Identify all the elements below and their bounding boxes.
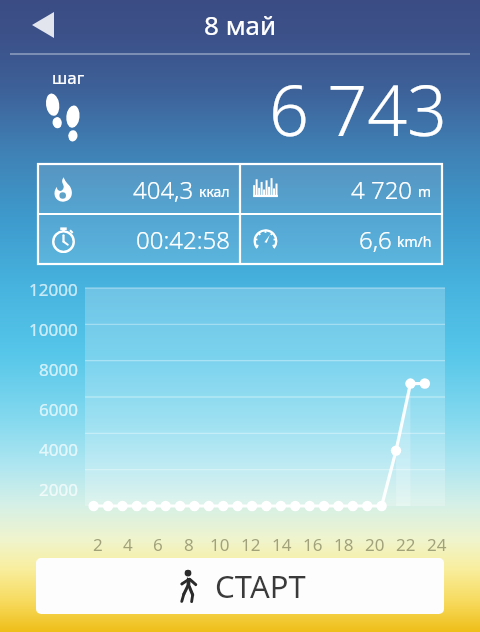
staticText: 12000	[29, 278, 78, 301]
staticText: 10000	[29, 318, 78, 341]
other: Calories	[50, 176, 77, 203]
staticText: 18	[334, 533, 354, 556]
staticText: СТАРТ	[215, 565, 306, 607]
staticText: 4 720	[351, 173, 413, 206]
staticText: 4000	[39, 438, 78, 461]
button[interactable]: Speed	[240, 214, 442, 264]
staticText: 22	[396, 533, 416, 556]
other: Distance	[252, 176, 279, 203]
staticText: 8 май	[204, 7, 277, 42]
staticText: 6000	[39, 398, 78, 421]
staticText: 10	[210, 533, 230, 556]
button[interactable]: СТАРТ	[36, 558, 444, 614]
staticText: m	[418, 182, 432, 201]
staticText: 20	[365, 533, 385, 556]
staticText: 16	[303, 533, 323, 556]
button[interactable]: Calories	[38, 164, 240, 214]
staticText: 6	[153, 533, 163, 556]
button[interactable]: Back	[16, 2, 70, 48]
staticText: 404,3	[133, 173, 194, 206]
staticText: 6 743	[269, 61, 448, 156]
staticText: 12	[241, 533, 261, 556]
staticText: 2	[93, 533, 103, 556]
staticText: 14	[272, 533, 292, 556]
staticText: 8000	[39, 358, 78, 381]
staticText: km/h	[397, 232, 432, 251]
staticText: 24	[427, 533, 447, 556]
staticText: 00:42:58	[136, 223, 230, 256]
staticText: 6,6	[359, 223, 392, 256]
other: Speed	[252, 226, 279, 253]
button[interactable]: Distance	[240, 164, 442, 214]
button[interactable]: Duration	[38, 214, 240, 264]
staticText: 8	[184, 533, 194, 556]
staticText: 2000	[39, 478, 78, 501]
other: Duration	[50, 226, 77, 253]
staticText: шаг	[52, 66, 85, 89]
staticText: 4	[123, 533, 133, 556]
staticText: ккал	[199, 182, 230, 201]
